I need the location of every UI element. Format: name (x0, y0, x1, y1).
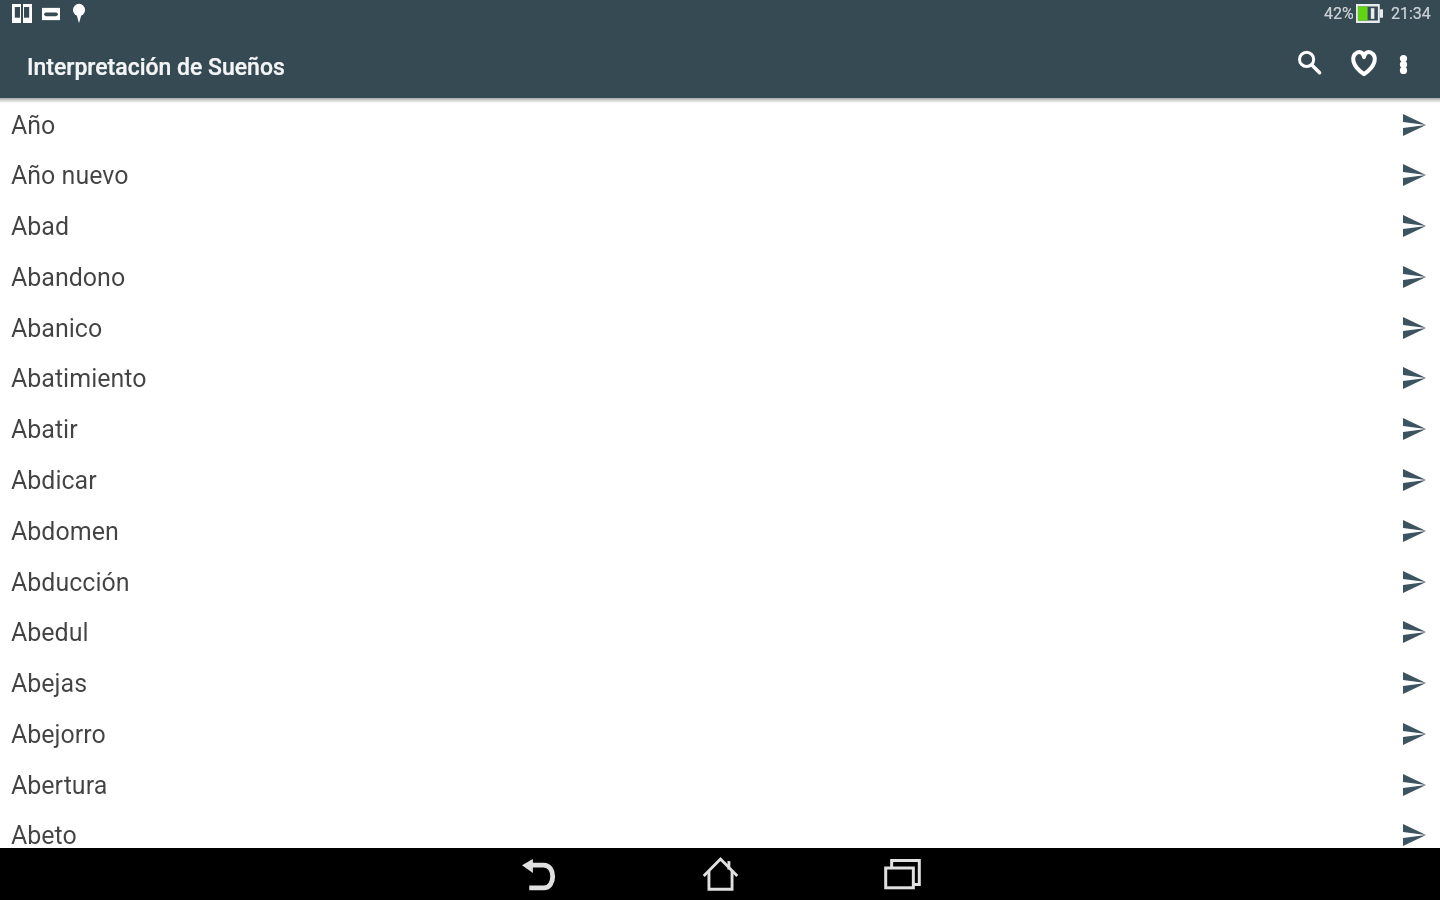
button[interactable]: Back (447, 848, 629, 900)
staticText: Abatimiento (11, 364, 1389, 393)
staticText: 21:34 (1391, 4, 1431, 23)
button[interactable]: Abdicar (0, 455, 1440, 505)
staticText: Abdicar (11, 466, 1389, 495)
staticText: Abducción (11, 568, 1389, 597)
button[interactable]: Abedul (0, 607, 1440, 657)
staticText: Año nuevo (11, 161, 1389, 190)
staticText: Abandono (11, 263, 1389, 292)
button[interactable]: Año nuevo (0, 150, 1440, 200)
button[interactable]: Abducción (0, 557, 1440, 607)
staticText: Interpretación de Sueños (27, 54, 285, 81)
staticText: Abejas (11, 669, 1389, 698)
staticText: Abdomen (11, 517, 1389, 546)
button[interactable]: Search (1282, 29, 1336, 95)
button[interactable]: More options (1379, 31, 1427, 97)
staticText: Abejorro (11, 720, 1389, 749)
staticText: 42% (1324, 4, 1354, 23)
button[interactable]: Home (629, 848, 811, 900)
button[interactable]: Año (0, 100, 1440, 150)
button[interactable]: Abertura (0, 760, 1440, 810)
staticText: Año (11, 111, 1389, 140)
button[interactable]: Abdomen (0, 506, 1440, 556)
button[interactable]: Abejorro (0, 709, 1440, 759)
button[interactable]: Abanico (0, 303, 1440, 353)
staticText: Abeto (11, 821, 1389, 850)
staticText: Abedul (11, 618, 1389, 647)
button[interactable]: Abatir (0, 404, 1440, 454)
button[interactable]: Recents (811, 848, 993, 900)
button[interactable]: Abatimiento (0, 353, 1440, 403)
button[interactable]: Abad (0, 201, 1440, 251)
button[interactable]: Abeto (0, 810, 1440, 860)
button[interactable]: Favorites (1337, 29, 1391, 95)
button[interactable]: Abejas (0, 658, 1440, 708)
button[interactable]: Abismo (0, 861, 1440, 900)
staticText: Abertura (11, 771, 1389, 800)
staticText: Abanico (11, 314, 1389, 343)
staticText: Abatir (11, 415, 1389, 444)
button[interactable]: Abandono (0, 252, 1440, 302)
staticText: Abismo (11, 872, 1389, 900)
staticText: Abad (11, 212, 1389, 241)
